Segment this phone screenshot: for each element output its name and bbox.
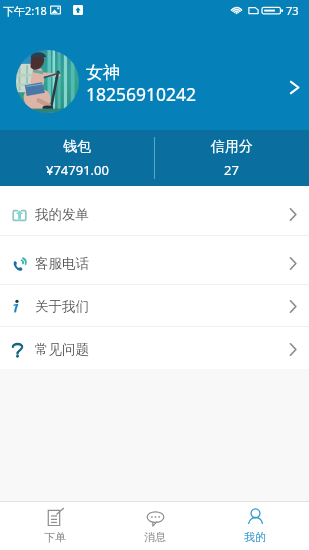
staticText: 73 xyxy=(286,3,299,18)
button[interactable]: 常见问题 xyxy=(0,327,309,369)
staticText: 客服电话 xyxy=(35,255,89,272)
button[interactable]: 我的 xyxy=(205,502,305,550)
button[interactable]: 女神 xyxy=(0,20,309,130)
staticText: 信用分 xyxy=(211,138,253,156)
staticText: ¥74791.00 xyxy=(46,161,109,179)
staticText: 钱包 xyxy=(63,138,91,156)
staticText: 关于我们 xyxy=(35,298,89,315)
staticText: 27 xyxy=(224,161,239,179)
button[interactable]: 关于我们 xyxy=(0,285,309,326)
staticText: 消息 xyxy=(144,530,166,544)
button[interactable]: 信用分 xyxy=(154,138,309,179)
button[interactable]: 下单 xyxy=(5,502,105,550)
staticText: 女神 xyxy=(86,62,120,83)
staticText: 下午2:18 xyxy=(3,3,47,18)
staticText: 18256910242 xyxy=(86,82,197,106)
button[interactable]: 我的发单 xyxy=(0,186,309,235)
button[interactable]: 消息 xyxy=(105,502,205,550)
button[interactable]: 客服电话 xyxy=(0,236,309,284)
staticText: 下单 xyxy=(44,530,66,544)
staticText: 我的 xyxy=(244,530,266,544)
staticText: 常见问题 xyxy=(35,341,89,358)
staticText: 我的发单 xyxy=(35,206,89,223)
button[interactable]: 钱包 xyxy=(0,138,154,179)
